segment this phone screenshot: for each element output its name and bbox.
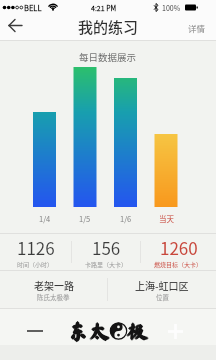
- button[interactable]: 老架一路: [0, 271, 107, 308]
- staticText: 极: [127, 321, 148, 342]
- staticText: 上海-虹口区: [135, 278, 189, 292]
- staticText: 时间（小时）: [17, 260, 54, 269]
- staticText: 我的练习: [78, 16, 139, 38]
- staticText: 100%: [162, 3, 181, 13]
- staticText: 详情: [188, 22, 206, 34]
- staticText: 东太: [68, 322, 110, 343]
- button[interactable]: 1126: [0, 234, 71, 270]
- staticText: 1260: [160, 235, 198, 260]
- button[interactable]: 详情: [178, 17, 216, 39]
- button[interactable]: 1260: [141, 234, 216, 270]
- button[interactable]: [0, 15, 30, 40]
- staticText: 4:21 PM: [91, 3, 117, 13]
- staticText: 卡路里（大卡）: [85, 260, 128, 269]
- button[interactable]: 上海-虹口区: [108, 271, 216, 308]
- staticText: 位置: [156, 292, 169, 301]
- staticText: 156: [92, 235, 121, 260]
- staticText: 东太: [68, 320, 110, 341]
- staticText: 1/4: [39, 213, 51, 224]
- staticText: 老架一路: [34, 278, 74, 292]
- staticText: 东太: [68, 321, 110, 342]
- staticText: 陈氏太极拳: [37, 292, 70, 301]
- staticText: 极: [127, 320, 148, 341]
- staticText: 1/6: [120, 213, 132, 224]
- staticText: 1/5: [79, 213, 91, 224]
- staticText: 每日数据展示: [79, 50, 137, 64]
- staticText: 当天: [159, 213, 174, 224]
- staticText: BELL: [24, 2, 42, 13]
- staticText: 东太: [67, 321, 109, 342]
- staticText: 东太: [68, 321, 110, 342]
- staticText: 东太: [69, 321, 111, 342]
- staticText: 极: [128, 321, 149, 342]
- staticText: 极: [127, 322, 148, 343]
- button[interactable]: [160, 316, 190, 346]
- staticText: 极: [127, 321, 148, 342]
- button[interactable]: [20, 316, 50, 346]
- staticText: 1126: [17, 235, 55, 260]
- button[interactable]: 156: [72, 234, 140, 270]
- staticText: 极: [126, 321, 147, 342]
- staticText: 东太: [68, 321, 110, 342]
- staticText: 燃烧目标（大卡）: [154, 260, 203, 269]
- staticText: 极: [127, 321, 148, 342]
